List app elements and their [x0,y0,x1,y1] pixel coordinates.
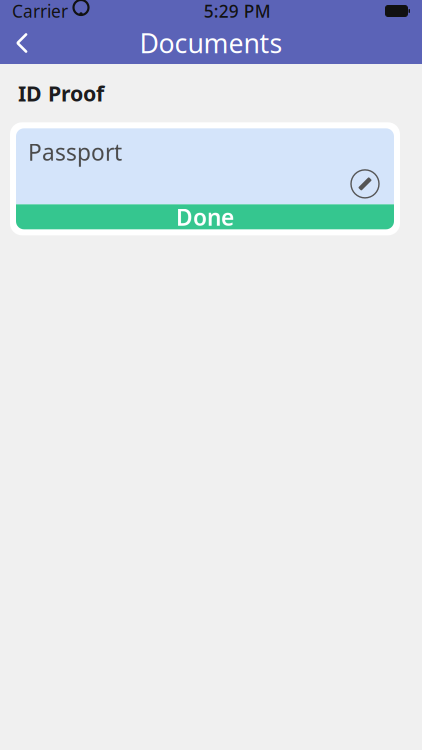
staticText: Passport [28,137,122,167]
staticText: Carrier [12,0,68,22]
staticText: 5:29 PM [204,0,271,22]
button[interactable]: Back [0,22,44,64]
staticText: Done [176,202,234,232]
staticText: ID Proof [18,79,104,107]
button[interactable]: Edit [348,167,382,201]
staticText: Documents [139,25,282,61]
button[interactable]: Done [16,204,394,229]
